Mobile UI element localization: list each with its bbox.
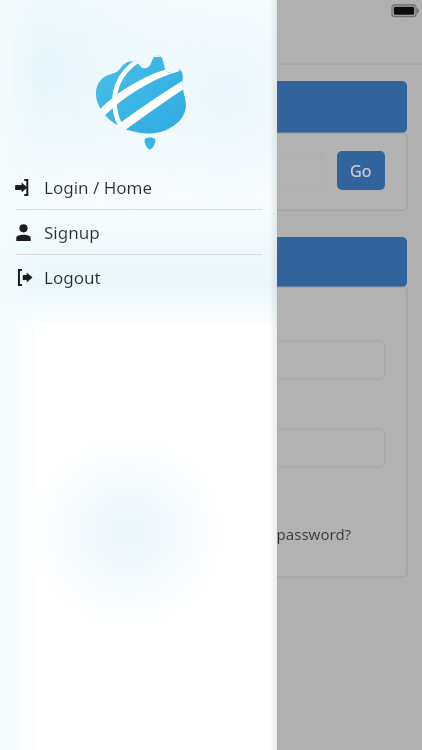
- button[interactable]: Signup: [0, 210, 277, 254]
- button[interactable]: Login / Home: [0, 165, 277, 209]
- staticText: Login / Home: [44, 176, 153, 199]
- button[interactable]: Logout: [0, 255, 277, 299]
- staticText: Go: [350, 160, 372, 182]
- staticText: Logout: [44, 266, 101, 289]
- staticText: Signup: [44, 221, 100, 244]
- staticText: Forgot your password?: [190, 524, 352, 544]
- button[interactable]: Forgot your password?: [190, 524, 352, 544]
- button[interactable]: Go: [337, 151, 385, 190]
